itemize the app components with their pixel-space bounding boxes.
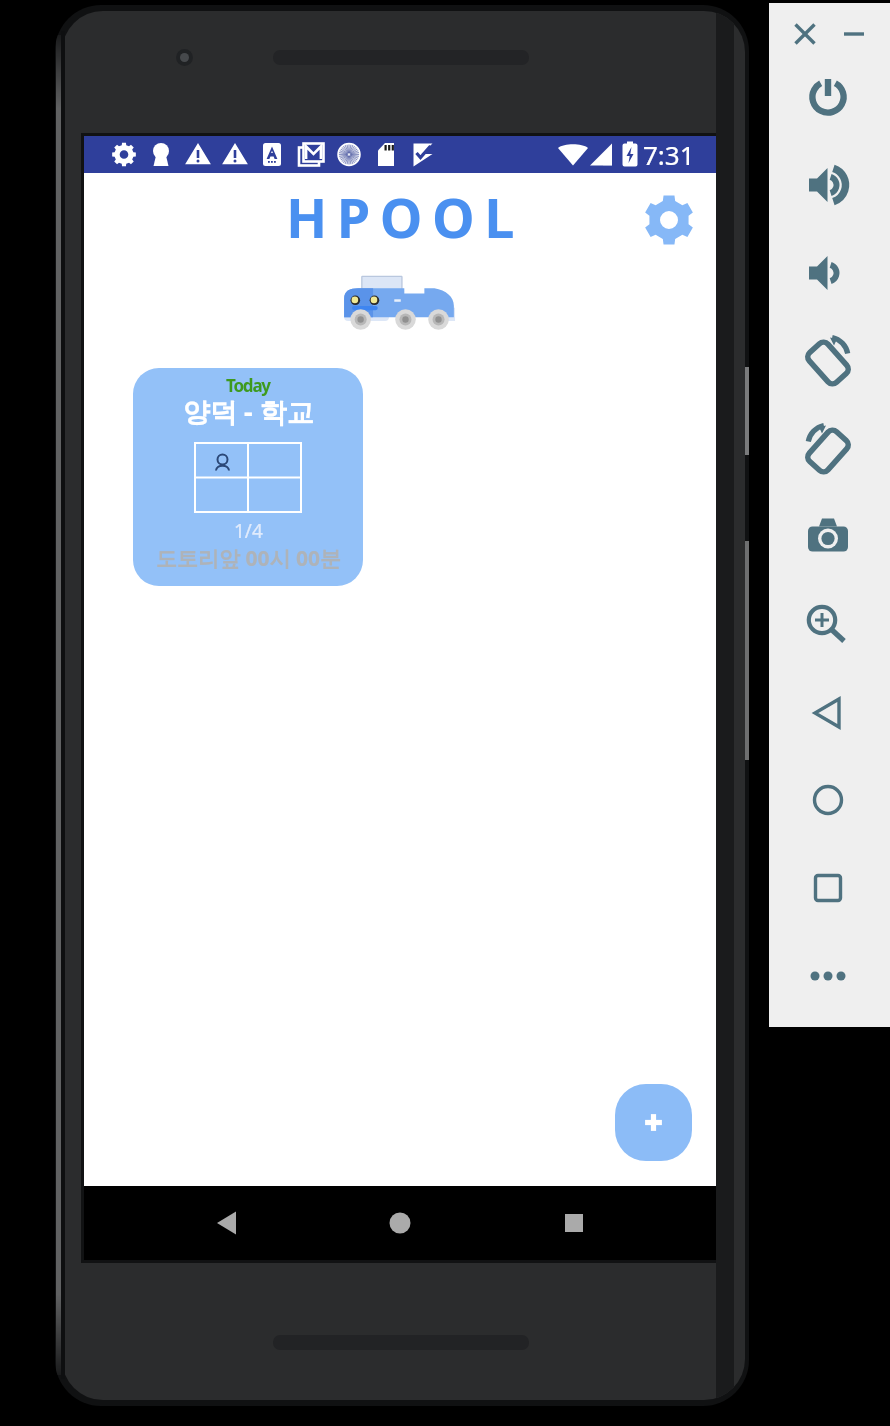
button[interactable]: Power: [801, 70, 855, 124]
button[interactable]: Minimize: [838, 18, 870, 50]
button[interactable]: More: [801, 949, 855, 1003]
button[interactable]: Screenshot: [801, 508, 855, 562]
staticText: Today: [226, 374, 270, 397]
staticText: 도토리앞 00시 00분: [156, 544, 341, 573]
button[interactable]: Add: [615, 1084, 692, 1161]
button[interactable]: Home: [801, 773, 855, 827]
button[interactable]: Volume down: [801, 246, 855, 300]
button[interactable]: Settings: [636, 187, 702, 253]
button[interactable]: Back: [196, 1192, 258, 1254]
staticText: 양덕 - 학교: [183, 393, 314, 430]
button[interactable]: Home: [369, 1192, 431, 1254]
button[interactable]: Back: [801, 686, 855, 740]
button[interactable]: Recents: [543, 1192, 605, 1254]
button[interactable]: Close: [789, 18, 821, 50]
button[interactable]: Zoom: [801, 597, 855, 651]
button[interactable]: Volume up: [801, 158, 855, 212]
button[interactable]: Today: [133, 368, 363, 586]
staticText: HPOOL: [286, 180, 524, 254]
staticText: 1/4: [234, 518, 263, 544]
staticText: 7:31: [643, 137, 695, 172]
button[interactable]: Overview: [801, 861, 855, 915]
button[interactable]: Rotate right: [801, 421, 855, 475]
button[interactable]: Rotate left: [801, 333, 855, 387]
